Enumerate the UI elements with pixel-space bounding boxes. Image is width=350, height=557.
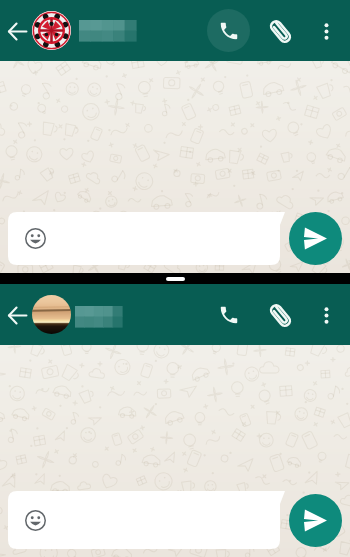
- button[interactable]: Send: [289, 494, 342, 547]
- button[interactable]: Attach: [262, 297, 298, 333]
- button[interactable]: Attach: [262, 13, 298, 49]
- button[interactable]: [8, 212, 285, 265]
- button[interactable]: Profile photo: [32, 11, 71, 50]
- button[interactable]: Back: [2, 300, 32, 330]
- button[interactable]: Back: [2, 16, 32, 46]
- button[interactable]: More options: [310, 299, 342, 331]
- button[interactable]: [8, 491, 285, 549]
- button[interactable]: Send: [289, 212, 342, 265]
- button[interactable]: [75, 306, 122, 327]
- button[interactable]: [79, 20, 136, 41]
- button[interactable]: Call: [207, 9, 250, 52]
- button[interactable]: More options: [310, 15, 342, 47]
- button[interactable]: Profile photo: [32, 295, 71, 334]
- button[interactable]: Call: [207, 293, 250, 336]
